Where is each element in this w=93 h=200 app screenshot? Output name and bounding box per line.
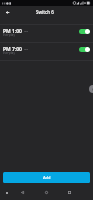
staticText: PM 7:00	[3, 46, 22, 53]
staticText: Add	[43, 175, 51, 180]
button[interactable]: Toggle alarm	[79, 47, 90, 52]
button[interactable]: Add	[3, 172, 90, 183]
button[interactable]: PM 7:00	[0, 44, 93, 62]
button[interactable]: Recents	[65, 188, 74, 197]
button[interactable]: PM 1:00	[0, 26, 93, 44]
staticText: PM 1:00	[3, 28, 22, 35]
staticText: AM	[24, 47, 28, 50]
staticText: AM	[24, 29, 28, 32]
button[interactable]: Home	[42, 188, 51, 197]
button[interactable]: Back	[3, 8, 12, 17]
button[interactable]: Toggle alarm	[79, 29, 90, 34]
staticText: Everyday	[3, 33, 15, 37]
button[interactable]: Back	[18, 188, 27, 197]
staticText: Switch 6	[36, 9, 54, 15]
button[interactable]: Scroll handle	[89, 85, 93, 93]
button[interactable]: Menu	[2, 188, 11, 197]
staticText: Everyday	[3, 51, 15, 55]
